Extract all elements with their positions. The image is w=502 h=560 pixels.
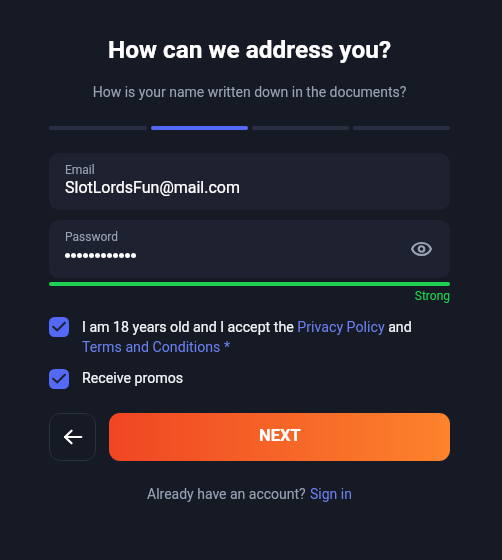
button[interactable]: Password	[49, 220, 450, 278]
button[interactable]: NEXT	[109, 413, 450, 461]
staticText: NEXT	[259, 426, 301, 445]
staticText: Password	[65, 230, 119, 244]
button[interactable]: Back	[49, 413, 96, 461]
staticText: How is your name written down in the doc…	[49, 84, 450, 100]
button[interactable]: Email	[49, 153, 450, 210]
button[interactable]: Sign in	[310, 486, 352, 502]
staticText: SlotLordsFun@mail.com	[65, 178, 241, 197]
staticText: I am 18 years old and I accept the Priva…	[82, 319, 417, 356]
staticText: Strong	[49, 289, 450, 303]
staticText: Email	[65, 163, 95, 177]
staticText: Already have an account?	[147, 486, 310, 502]
staticText: Receive promos	[82, 370, 184, 387]
button[interactable]: Receive promos	[49, 369, 450, 389]
staticText: How can we address you?	[49, 35, 450, 64]
button[interactable]: Show password	[406, 234, 436, 264]
button[interactable]: I am 18 years old and I accept the Priva…	[49, 317, 450, 354]
